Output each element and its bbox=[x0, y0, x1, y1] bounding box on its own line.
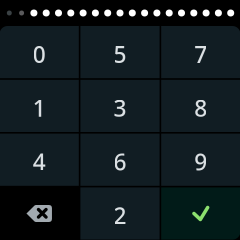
staticText: 9 bbox=[194, 147, 207, 177]
button[interactable]: 5 bbox=[80, 26, 160, 78]
staticText: 7 bbox=[194, 39, 207, 69]
staticText: 6 bbox=[113, 147, 126, 177]
button[interactable]: 1 bbox=[0, 80, 79, 132]
button[interactable]: 7 bbox=[161, 26, 240, 78]
staticText: 0 bbox=[33, 39, 46, 69]
staticText: 8 bbox=[194, 93, 207, 123]
button[interactable]: 9 bbox=[161, 134, 240, 186]
button[interactable]: 0 bbox=[0, 26, 79, 78]
button[interactable]: 4 bbox=[0, 134, 79, 186]
staticText: 4 bbox=[33, 147, 46, 177]
staticText: 5 bbox=[113, 39, 126, 69]
button[interactable]: 3 bbox=[80, 80, 160, 132]
button[interactable]: Confirm bbox=[161, 187, 240, 240]
button[interactable]: Delete bbox=[0, 187, 79, 240]
staticText: 1 bbox=[33, 93, 46, 123]
staticText: 2 bbox=[113, 200, 126, 230]
button[interactable]: 2 bbox=[80, 187, 160, 240]
staticText: 3 bbox=[113, 93, 126, 123]
button[interactable]: 8 bbox=[161, 80, 240, 132]
button[interactable]: 6 bbox=[80, 134, 160, 186]
